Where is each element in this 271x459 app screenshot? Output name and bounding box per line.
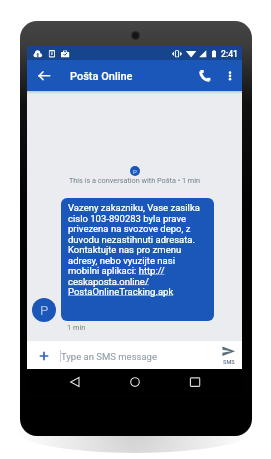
- staticText: mobilni aplikaci: http://: [68, 265, 165, 276]
- staticText: privezena na svozove depo, z: [68, 223, 191, 234]
- button[interactable]: Add attachment: [34, 346, 54, 366]
- button[interactable]: Recent apps: [185, 372, 205, 392]
- staticText: PostaOnlineTracking.apk: [68, 286, 174, 297]
- staticText: 1 min: [67, 323, 86, 332]
- staticText: P: [40, 303, 49, 318]
- staticText: Kontaktujte nas pro zmenu: [68, 244, 182, 255]
- staticText: duvodu nezastihnuti adresata.: [68, 233, 196, 244]
- button[interactable]: Vazeny zakazniku, Vase zasilka: [61, 198, 214, 321]
- staticText: adresy, nebo vyuzijte nasi: [68, 254, 175, 265]
- button[interactable]: Home: [125, 372, 145, 392]
- staticText: This is a conversation with Pošta • 1 mi…: [27, 176, 242, 185]
- staticText: Type an SMS message: [61, 351, 157, 362]
- button[interactable]: Send SMS: [219, 343, 243, 367]
- button[interactable]: Call: [195, 65, 215, 85]
- button[interactable]: Back: [65, 372, 85, 392]
- staticText: SMS: [223, 359, 235, 366]
- button[interactable]: More options: [220, 65, 240, 85]
- staticText: 2:41: [221, 49, 238, 59]
- staticText: Vazeny zakazniku, Vase zasilka: [68, 202, 200, 213]
- button[interactable]: Navigate up: [35, 65, 55, 85]
- staticText: P: [133, 168, 137, 175]
- staticText: cislo 103-890283 byla prave: [68, 212, 186, 223]
- staticText: Pošta Online: [70, 70, 133, 83]
- staticText: ceskaposta.online/: [68, 275, 149, 286]
